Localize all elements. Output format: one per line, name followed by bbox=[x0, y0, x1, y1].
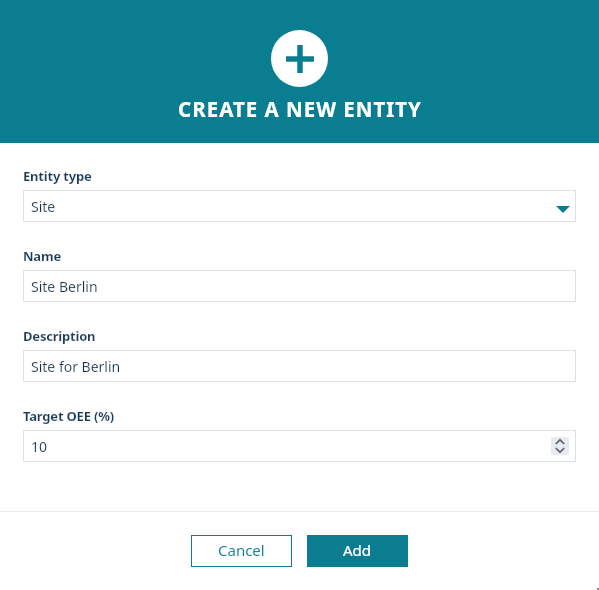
button[interactable]: Site for Berlin bbox=[23, 350, 576, 382]
staticText: Site Berlin bbox=[31, 277, 98, 296]
button[interactable]: Site bbox=[23, 190, 576, 222]
staticText: Name bbox=[23, 247, 61, 265]
button[interactable]: Site Berlin bbox=[23, 270, 576, 302]
staticText: Cancel bbox=[218, 540, 265, 560]
staticText: 10 bbox=[31, 437, 48, 456]
staticText: Site bbox=[31, 197, 56, 216]
staticText: Description bbox=[23, 327, 96, 345]
button[interactable]: Cancel bbox=[191, 535, 292, 567]
button[interactable]: Add entity bbox=[271, 30, 328, 87]
staticText: Add bbox=[343, 540, 372, 560]
staticText: Entity type bbox=[23, 167, 92, 185]
button[interactable]: Increase or decrease value bbox=[551, 437, 569, 455]
staticText: CREATE A NEW ENTITY bbox=[178, 95, 422, 123]
staticText: Site for Berlin bbox=[31, 357, 121, 376]
button[interactable]: 10 bbox=[23, 430, 576, 462]
staticText: Target OEE (%) bbox=[23, 407, 114, 425]
button[interactable]: Add bbox=[307, 535, 408, 567]
